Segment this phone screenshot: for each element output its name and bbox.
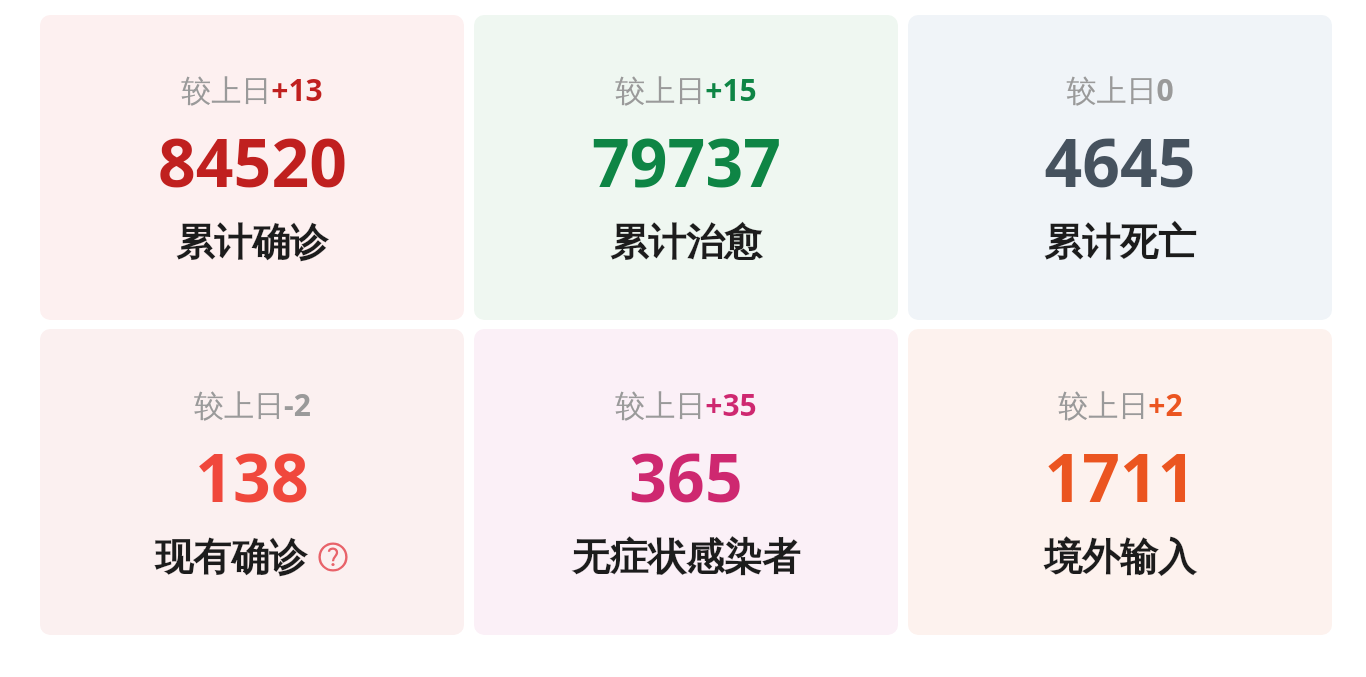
staticText: 累计死亡 [1044,218,1196,266]
staticText: 79737 [592,116,781,206]
staticText: 较上日-2 [194,384,311,425]
button[interactable]: 较上日-2 [40,329,464,635]
staticText: 累计治愈 [610,218,762,266]
staticText: 138 [195,431,309,521]
staticText: 境外输入 [1044,533,1196,581]
button[interactable]: Help about current confirmed cases [316,540,350,574]
button[interactable]: 较上日+2 [908,329,1332,635]
staticText: 较上日+15 [615,69,757,110]
button[interactable]: 较上日+35 [474,329,898,635]
staticText: 84520 [158,116,347,206]
staticText: 较上日+13 [181,69,323,110]
staticText: 365 [629,431,743,521]
staticText: 1711 [1044,431,1196,521]
button[interactable]: 较上日+13 [40,15,464,320]
staticText: 现有确诊 [155,533,307,581]
staticText: 较上日0 [1066,69,1174,110]
staticText: 4645 [1044,116,1196,206]
staticText: 无症状感染者 [572,533,800,581]
staticText: 较上日+35 [615,384,757,425]
staticText: 较上日+2 [1058,384,1183,425]
button[interactable]: 较上日0 [908,15,1332,320]
staticText: 累计确诊 [176,218,328,266]
button[interactable]: 较上日+15 [474,15,898,320]
